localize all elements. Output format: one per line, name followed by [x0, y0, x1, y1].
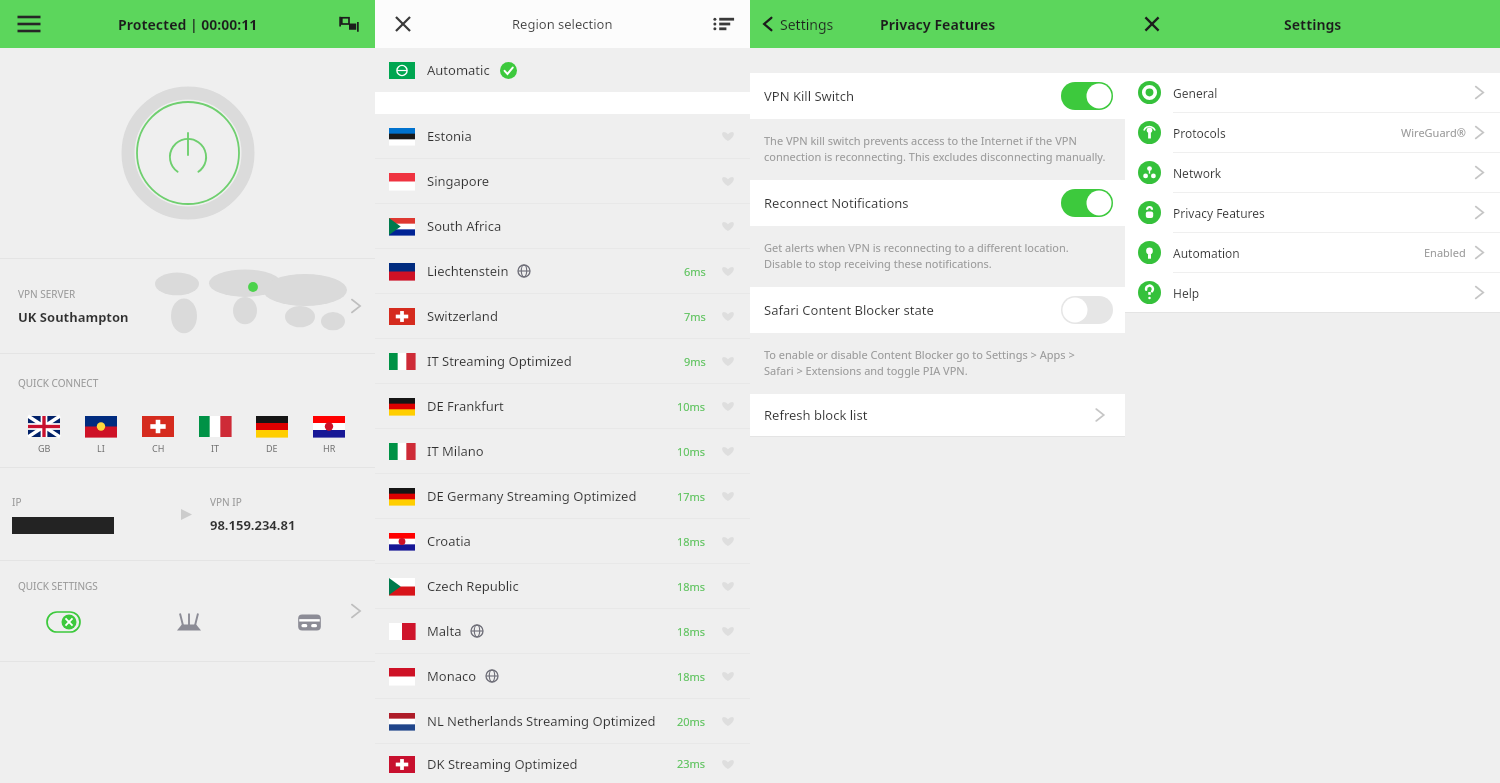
- staticText: Privacy Features: [880, 15, 996, 34]
- staticText: Automation: [1173, 245, 1240, 261]
- staticText: Malta: [427, 622, 462, 640]
- button[interactable]: Add to favorites: [718, 441, 738, 461]
- staticText: 18ms: [677, 669, 706, 684]
- button[interactable]: South Africa: [375, 204, 750, 248]
- button[interactable]: Menu: [12, 7, 46, 41]
- button[interactable]: Add to favorites: [718, 261, 738, 281]
- staticText: 10ms: [677, 444, 706, 459]
- button[interactable]: Add to favorites: [718, 171, 738, 191]
- staticText: LI: [97, 442, 105, 454]
- staticText: WireGuard®: [1401, 125, 1466, 140]
- staticText: Get alerts when VPN is reconnecting to a…: [764, 240, 1107, 271]
- button[interactable]: Add to favorites: [718, 666, 738, 686]
- staticText: Refresh block list: [764, 406, 868, 424]
- button[interactable]: Croatia: [375, 519, 750, 563]
- staticText: VPN Kill Switch: [764, 87, 855, 105]
- staticText: VPN SERVER: [18, 287, 76, 301]
- staticText: 20ms: [677, 714, 706, 729]
- button[interactable]: Monaco: [375, 654, 750, 698]
- button[interactable]: Disconnect VPN: [121, 86, 255, 220]
- button[interactable]: Add to favorites: [718, 711, 738, 731]
- button[interactable]: IT: [199, 416, 231, 454]
- staticText: Singapore: [427, 172, 490, 190]
- staticText: 23ms: [677, 756, 706, 771]
- button[interactable]: Refresh block list: [750, 394, 1125, 436]
- button[interactable]: IT Streaming Optimized: [375, 339, 750, 383]
- button[interactable]: Add to favorites: [718, 216, 738, 236]
- button[interactable]: LI: [85, 416, 117, 454]
- staticText: DE Germany Streaming Optimized: [427, 487, 637, 505]
- button[interactable]: DE: [256, 416, 288, 454]
- staticText: Help: [1173, 285, 1200, 301]
- button[interactable]: Add to favorites: [718, 396, 738, 416]
- staticText: IT Milano: [427, 442, 484, 460]
- staticText: Safari Content Blocker state: [764, 301, 934, 319]
- button[interactable]: Malta: [375, 609, 750, 653]
- button[interactable]: General: [1125, 73, 1500, 112]
- staticText: DE Frankfurt: [427, 397, 504, 415]
- button[interactable]: Add to favorites: [718, 351, 738, 371]
- button[interactable]: DE Germany Streaming Optimized: [375, 474, 750, 518]
- staticText: Monaco: [427, 667, 477, 685]
- button[interactable]: DK Streaming Optimized: [375, 744, 750, 783]
- button[interactable]: Reconnect Notifications: [750, 180, 1125, 226]
- button[interactable]: QUICK SETTINGS: [0, 561, 375, 661]
- staticText: Automatic: [427, 61, 490, 79]
- staticText: Reconnect Notifications: [764, 194, 909, 212]
- button[interactable]: GB: [28, 416, 60, 454]
- staticText: QUICK SETTINGS: [18, 579, 98, 593]
- button[interactable]: Sort regions: [712, 12, 736, 36]
- button[interactable]: VPN Kill Switch: [750, 73, 1125, 119]
- button[interactable]: Add to favorites: [718, 754, 738, 774]
- staticText: IT Streaming Optimized: [427, 352, 572, 370]
- button[interactable]: Close: [1137, 9, 1167, 39]
- button[interactable]: Switzerland: [375, 294, 750, 338]
- button[interactable]: Add to favorites: [718, 621, 738, 641]
- button[interactable]: Protocols: [1125, 113, 1500, 152]
- button[interactable]: Automatic: [375, 48, 750, 92]
- staticText: 17ms: [677, 489, 706, 504]
- staticText: 18ms: [677, 534, 706, 549]
- button[interactable]: Add to favorites: [718, 486, 738, 506]
- button[interactable]: Connection snapshot: [337, 12, 361, 36]
- staticText: General: [1173, 85, 1218, 101]
- staticText: Region selection: [512, 15, 613, 33]
- staticText: Estonia: [427, 127, 472, 145]
- staticText: Switzerland: [427, 307, 498, 325]
- button[interactable]: MACE ad blocker: [296, 609, 323, 636]
- button[interactable]: Add to favorites: [718, 306, 738, 326]
- button[interactable]: IT Milano: [375, 429, 750, 473]
- staticText: Protected | 00:00:11: [118, 15, 258, 34]
- button[interactable]: VPN SERVER: [0, 259, 375, 353]
- button[interactable]: Add to favorites: [718, 576, 738, 596]
- button[interactable]: CH: [142, 416, 174, 454]
- button[interactable]: Close: [387, 8, 419, 40]
- button[interactable]: Liechtenstein: [375, 249, 750, 293]
- staticText: Protocols: [1173, 125, 1226, 141]
- button[interactable]: Port forwarding: [174, 607, 204, 637]
- staticText: 98.159.234.81: [210, 516, 296, 534]
- button[interactable]: Safari Content Blocker state: [750, 287, 1125, 333]
- staticText: Liechtenstein: [427, 262, 509, 280]
- button[interactable]: Czech Republic: [375, 564, 750, 608]
- button[interactable]: Privacy Features: [1125, 193, 1500, 232]
- staticText: DK Streaming Optimized: [427, 755, 578, 773]
- button[interactable]: Network: [1125, 153, 1500, 192]
- button[interactable]: Add to favorites: [718, 531, 738, 551]
- button[interactable]: HR: [313, 416, 345, 454]
- button[interactable]: DE Frankfurt: [375, 384, 750, 428]
- button[interactable]: Estonia: [375, 114, 750, 158]
- button[interactable]: Help: [1125, 273, 1500, 312]
- staticText: 18ms: [677, 579, 706, 594]
- staticText: Privacy Features: [1173, 205, 1265, 221]
- button[interactable]: Settings: [756, 12, 842, 36]
- button[interactable]: Automation: [1125, 233, 1500, 272]
- button[interactable]: Kill switch: [46, 611, 81, 633]
- staticText: To enable or disable Content Blocker go …: [764, 347, 1107, 378]
- button[interactable]: NL Netherlands Streaming Optimized: [375, 699, 750, 743]
- staticText: IP: [12, 495, 22, 509]
- button[interactable]: Singapore: [375, 159, 750, 203]
- button[interactable]: Add to favorites: [718, 126, 738, 146]
- staticText: Enabled: [1424, 245, 1466, 260]
- staticText: IT: [211, 442, 220, 454]
